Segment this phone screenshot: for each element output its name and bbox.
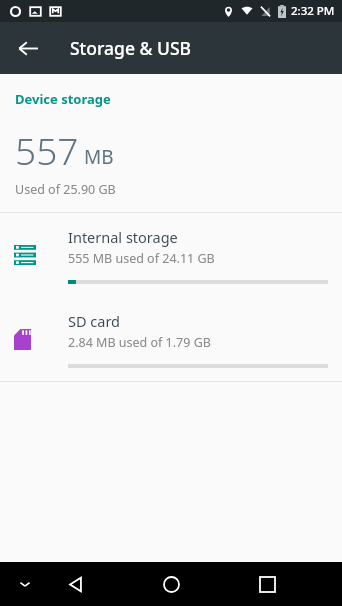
staticText: 555 MB used of 24.11 GB [68,250,215,267]
button[interactable]: Home [148,562,194,606]
staticText: Storage & USB [70,36,191,60]
button[interactable]: Back [6,26,50,70]
staticText: SD card [68,311,121,331]
other: SD card icon [14,329,31,350]
button[interactable]: Back [52,562,98,606]
staticText: Device storage [15,90,111,108]
button[interactable]: Hide keyboard [6,565,44,603]
staticText: 2.84 MB used of 1.79 GB [68,334,211,351]
other: Internal storage icon [14,245,36,265]
button[interactable]: SD card icon [0,297,342,381]
staticText: Used of 25.90 GB [15,181,116,198]
button[interactable]: Internal storage icon [0,213,342,297]
staticText: Internal storage [68,227,178,247]
button[interactable]: Recent apps [244,562,290,606]
staticText: 557 [15,125,79,175]
staticText: MB [84,144,114,170]
staticText: 2:32 PM [291,3,335,19]
